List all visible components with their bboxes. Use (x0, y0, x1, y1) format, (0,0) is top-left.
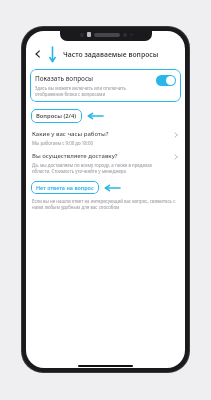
button[interactable]: Показать вопросы (30, 69, 181, 102)
button[interactable]: Нет ответа на вопрос (31, 181, 99, 194)
staticText: Да, мы доставляем по всему городу, а так… (32, 162, 168, 174)
staticText: Показать вопросы (35, 74, 94, 83)
button[interactable]: Back (31, 47, 45, 61)
staticText: Какие у вас часы работы? (32, 130, 109, 138)
staticText: Вопросы (2/4) (36, 112, 77, 120)
staticText: Мы работаем с 9:00 до 18:00 (32, 140, 93, 146)
button[interactable]: Какие у вас часы работы? (26, 130, 185, 146)
button[interactable]: Вы осуществляете доставку? (26, 152, 185, 174)
staticText: Нет ответа на вопрос (36, 184, 94, 191)
staticText: Вы осуществляете доставку? (32, 152, 118, 160)
button[interactable]: Вопросы (2/4) (31, 109, 82, 123)
staticText: Если вы не нашли ответ на интересующий в… (32, 198, 179, 210)
button[interactable]: Show questions toggle (156, 75, 176, 86)
staticText: Часто задаваемые вопросы (63, 50, 159, 59)
staticText: Здесь вы можете включить или отключить о… (35, 85, 152, 97)
